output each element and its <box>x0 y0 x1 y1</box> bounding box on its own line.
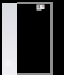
button[interactable]: Open item <box>36 4 45 11</box>
button[interactable]: Navigation drawer <box>2 3 17 75</box>
